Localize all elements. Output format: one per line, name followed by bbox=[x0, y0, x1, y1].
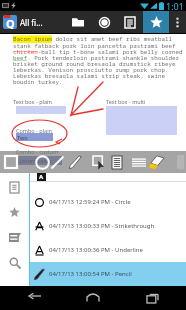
button[interactable]: Highlighter tool bbox=[146, 154, 166, 171]
button[interactable]: Recent bbox=[91, 11, 117, 33]
button[interactable]: Q bbox=[0, 11, 45, 33]
staticText: 1:01 bbox=[166, 0, 184, 11]
button[interactable]: Folders bbox=[65, 11, 91, 33]
button[interactable]: More tools bbox=[174, 154, 186, 170]
staticText: Bacon ipsum dolor sit amet beef ribs mea… bbox=[13, 35, 183, 86]
button[interactable]: Documents bbox=[117, 11, 143, 33]
button[interactable]: Pen tool bbox=[68, 155, 83, 170]
button[interactable]: Home bbox=[68, 286, 118, 310]
staticText: Q bbox=[6, 16, 15, 29]
staticText: 04/17/13 13:00:33 PM - Strikethrough bbox=[49, 222, 155, 230]
button[interactable]: 04/17/13 12:59:24 PM - Circle bbox=[30, 190, 186, 214]
button[interactable]: Recents bbox=[127, 286, 177, 310]
button[interactable]: Ellipse tool bbox=[35, 155, 50, 170]
staticText: 04/17/13 12:59:24 PM - Circle bbox=[49, 198, 131, 206]
button[interactable]: Shape colour bbox=[4, 155, 18, 169]
staticText: A bbox=[39, 173, 44, 181]
staticText: Combo - plain bbox=[16, 127, 52, 134]
button[interactable]: Note tool bbox=[110, 155, 124, 169]
button[interactable]: Back bbox=[9, 286, 59, 310]
button[interactable]: Search bbox=[0, 252, 29, 273]
staticText: All fi... bbox=[20, 17, 43, 28]
button[interactable]: Annotations bbox=[0, 227, 29, 248]
button[interactable]: Outline bbox=[0, 177, 29, 198]
button[interactable]: Bookmarks bbox=[0, 202, 29, 223]
staticText: Two bbox=[17, 134, 28, 141]
button[interactable]: Strikethrough tool bbox=[131, 155, 146, 170]
button[interactable]: Text select tool bbox=[92, 155, 107, 170]
staticText: 04/17/13 13:00:54 PM - Pencil bbox=[49, 270, 132, 278]
button[interactable]: 04/17/13 13:00:54 PM - Pencil bbox=[30, 262, 186, 286]
staticText: Text box - multi bbox=[106, 98, 146, 105]
button[interactable]: 04/17/13 13:00:33 PM - Strikethrough bbox=[30, 214, 186, 238]
staticText: Combo - custom bbox=[16, 148, 59, 155]
button[interactable]: Starred bbox=[143, 11, 169, 33]
staticText: 04/17/13 13:00:36 PM - Underline bbox=[49, 246, 143, 254]
button[interactable]: More options bbox=[169, 11, 186, 33]
staticText: Text box - plain bbox=[13, 98, 52, 105]
staticText: custom value bbox=[17, 157, 52, 164]
button[interactable]: Line tool bbox=[50, 155, 65, 170]
button[interactable]: 04/17/13 13:00:36 PM - Underline bbox=[30, 238, 186, 262]
